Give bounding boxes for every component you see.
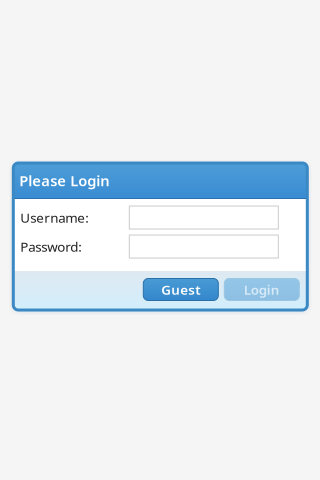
button[interactable]: Username: — [129, 206, 278, 229]
staticText: Username: — [20, 209, 89, 226]
button[interactable]: Password: — [129, 235, 278, 258]
staticText: Guest — [161, 281, 200, 298]
button[interactable]: Login — [224, 278, 299, 300]
button[interactable]: Guest — [143, 278, 218, 300]
staticText: Please Login — [19, 171, 109, 190]
staticText: Password: — [20, 238, 82, 255]
staticText: Login — [244, 281, 280, 298]
